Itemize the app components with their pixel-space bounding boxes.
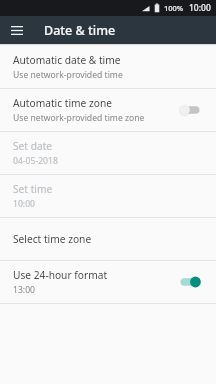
staticText: Automatic date & time bbox=[13, 53, 121, 67]
staticText: Use network-provided time bbox=[13, 69, 123, 81]
button[interactable]: Toggle, off bbox=[177, 100, 203, 120]
staticText: 10:00 bbox=[189, 2, 211, 14]
button[interactable]: Select time zone bbox=[0, 218, 216, 260]
staticText: Select time zone bbox=[13, 232, 92, 246]
staticText: Set date bbox=[13, 139, 53, 153]
staticText: 04-05-2018 bbox=[13, 155, 58, 167]
button[interactable]: Automatic date & time bbox=[0, 46, 216, 88]
staticText: 100% bbox=[164, 3, 184, 13]
button[interactable]: Automatic time zone bbox=[0, 89, 216, 131]
button[interactable]: Open navigation menu bbox=[7, 20, 27, 40]
staticText: 13:00 bbox=[13, 284, 35, 296]
button[interactable]: Set date bbox=[0, 132, 216, 174]
staticText: Set time bbox=[13, 182, 53, 196]
staticText: Use 24-hour format bbox=[13, 268, 108, 282]
staticText: Date & time bbox=[44, 22, 116, 39]
staticText: Automatic time zone bbox=[13, 96, 112, 110]
button[interactable]: Use 24-hour format bbox=[0, 261, 216, 303]
staticText: 10:00 bbox=[13, 198, 35, 210]
staticText: Use network-provided time zone bbox=[13, 112, 145, 124]
button[interactable]: Toggle, on bbox=[177, 272, 203, 292]
button[interactable]: Set time bbox=[0, 175, 216, 217]
